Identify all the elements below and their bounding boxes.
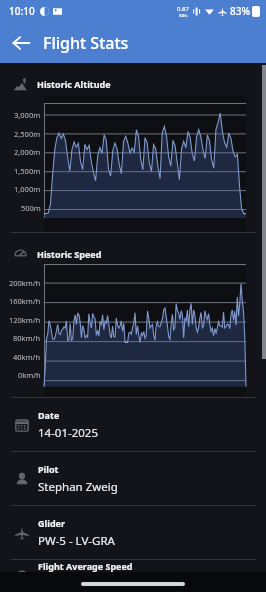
staticText: KB/s [179, 13, 188, 18]
staticText: 83% [230, 4, 250, 18]
staticText: 1,000m [14, 184, 41, 194]
staticText: Flight Average Speed [38, 560, 133, 572]
staticText: 200km/h [9, 278, 41, 288]
button[interactable]: Glider [0, 506, 266, 559]
staticText: Flight Stats [43, 32, 129, 54]
button[interactable]: Flight Average Speed [0, 560, 266, 592]
staticText: 40km/h [13, 352, 41, 362]
button[interactable]: Date [0, 398, 266, 451]
staticText: Historic Speed [37, 248, 102, 260]
staticText: 3,000m [14, 110, 41, 120]
staticText: 1,500m [14, 166, 41, 176]
staticText: 80km/h [13, 333, 41, 343]
staticText: PW-5 - LV-GRA [38, 533, 115, 549]
staticText: 2,000m [14, 147, 41, 157]
staticText: 10:10 [9, 4, 35, 18]
staticText: 500m [21, 203, 41, 213]
button[interactable]: Pilot [0, 452, 266, 505]
staticText: 0km/h [18, 370, 41, 380]
staticText: Pilot [38, 463, 59, 475]
staticText: Stephan Zweig [38, 479, 118, 495]
staticText: Historic Altitude [37, 78, 111, 90]
staticText: Glider [38, 517, 65, 529]
staticText: Date [38, 409, 60, 421]
button[interactable]: Back [0, 22, 41, 63]
staticText: 14-01-2025 [38, 425, 99, 441]
staticText: 2,500m [14, 129, 41, 139]
staticText: 120km/h [9, 315, 41, 325]
staticText: 160km/h [9, 296, 41, 306]
staticText: 0.87 [177, 5, 189, 13]
staticText: 112 km/h [38, 576, 90, 592]
